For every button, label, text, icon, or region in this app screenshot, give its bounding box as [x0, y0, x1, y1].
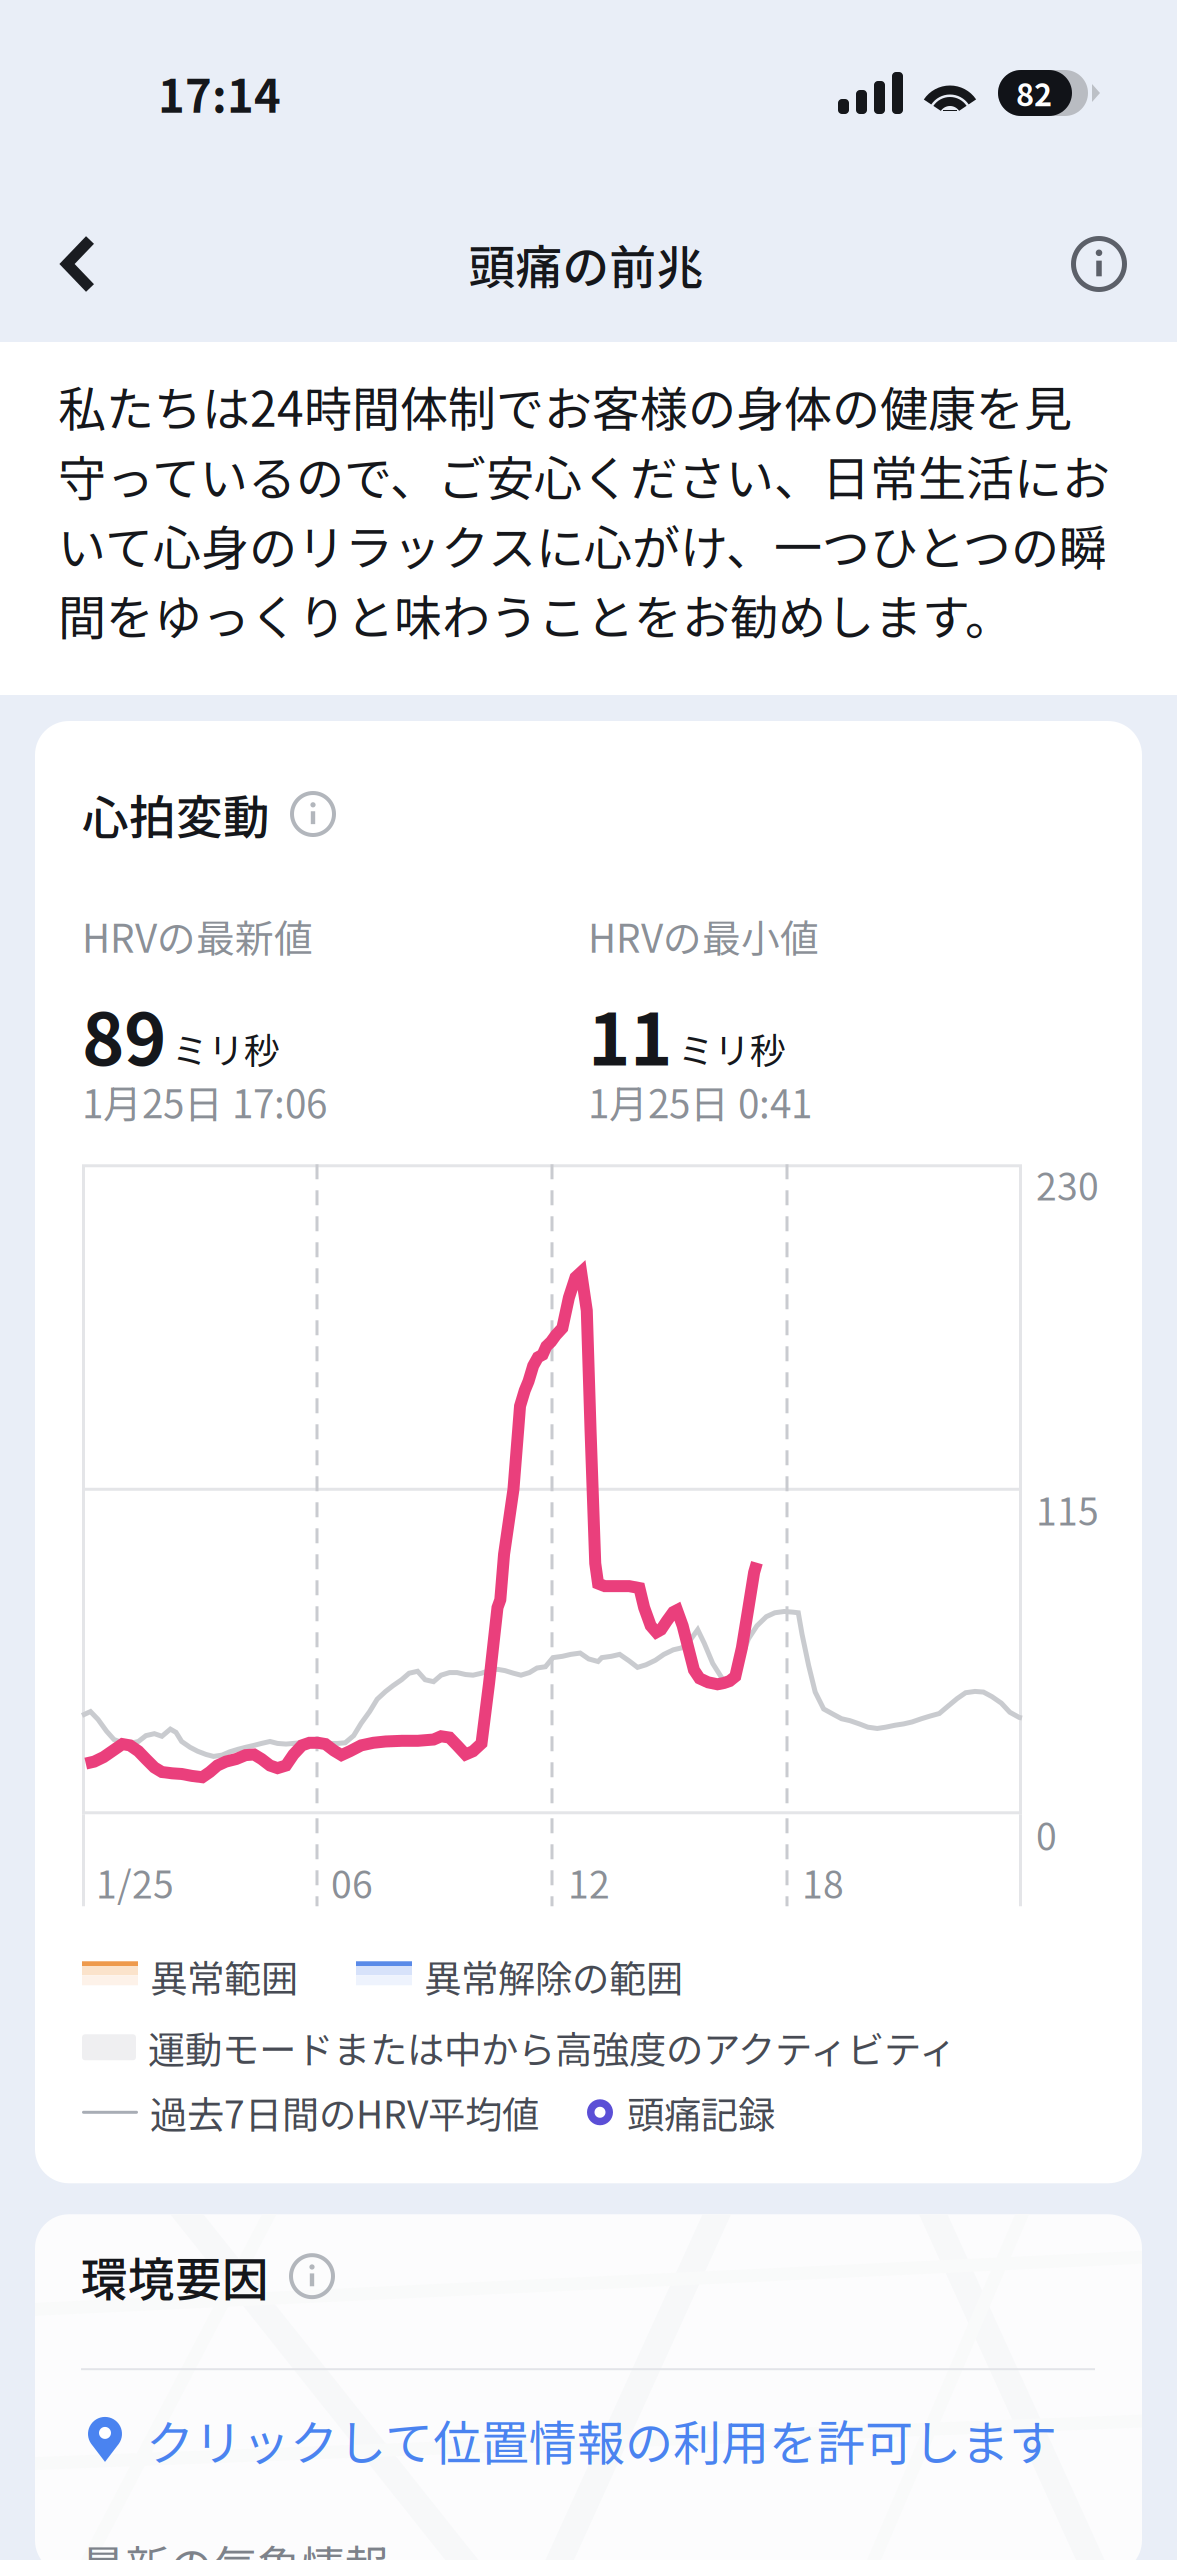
staticText: クリックして位置情報の利用を許可します — [146, 2405, 1057, 2475]
staticText: 1月25日 17:06 — [82, 1073, 327, 1129]
button[interactable]: Back — [0, 191, 137, 337]
staticText: 環境要因 — [81, 2242, 269, 2310]
staticText: 06 — [331, 1855, 373, 1909]
staticText: 頭痛の前兆 — [468, 230, 703, 298]
staticText: HRVの最新値 — [82, 908, 313, 964]
staticText: 1/25 — [96, 1855, 174, 1909]
staticText: 12 — [568, 1855, 610, 1909]
staticText: 過去7日間のHRV平均値 — [150, 2085, 539, 2139]
staticText: 最新の気象情報 — [81, 2532, 389, 2560]
staticText: 0 — [1036, 1807, 1057, 1861]
staticText: 私たちは24時間体制でお客様の身体の健康を見守っているので、ご安心ください、日常… — [58, 371, 1110, 649]
staticText: HRVの最小値 — [588, 908, 819, 964]
staticText: 18 — [802, 1855, 844, 1909]
staticText: 1月25日 0:41 — [588, 1073, 812, 1129]
staticText: 頭痛記録 — [627, 2085, 775, 2139]
staticText: 運動モードまたは中から高強度のアクティビティ — [148, 2020, 956, 2074]
staticText: 心拍変動 — [82, 780, 270, 848]
button[interactable]: クリックして位置情報の利用を許可します — [81, 2370, 1114, 2486]
staticText: ミリ秒 — [172, 1022, 280, 1074]
staticText: 異常範囲 — [150, 1949, 298, 2003]
staticText: 82 — [1016, 71, 1052, 115]
staticText: 異常解除の範囲 — [424, 1949, 683, 2003]
staticText: 11 — [588, 982, 672, 1086]
staticText: 17:14 — [158, 60, 281, 126]
staticText: 89 — [82, 982, 166, 1086]
staticText: ミリ秒 — [678, 1022, 786, 1074]
staticText: 230 — [1036, 1157, 1099, 1211]
staticText: 115 — [1036, 1482, 1099, 1536]
button[interactable]: Information — [1035, 191, 1177, 337]
